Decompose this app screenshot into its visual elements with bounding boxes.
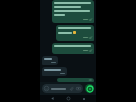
other: Camera bbox=[76, 86, 81, 91]
button[interactable] bbox=[42, 56, 58, 65]
button[interactable]: Emoji bbox=[42, 84, 83, 93]
other: Attach bbox=[69, 86, 74, 91]
button[interactable] bbox=[42, 67, 67, 76]
button[interactable]: Home bbox=[65, 95, 72, 102]
button[interactable] bbox=[57, 78, 94, 82]
other: Emoji bbox=[44, 86, 49, 91]
button[interactable] bbox=[56, 25, 94, 41]
button[interactable]: Back bbox=[49, 95, 56, 102]
button[interactable]: Recent apps bbox=[80, 95, 87, 102]
button[interactable] bbox=[52, 0, 94, 23]
button[interactable] bbox=[52, 43, 94, 54]
button[interactable]: Send voice message bbox=[85, 84, 94, 93]
